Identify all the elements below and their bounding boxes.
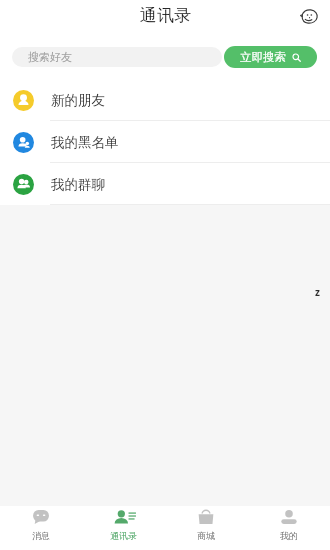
- staticText: 立即搜索: [240, 50, 286, 64]
- button[interactable]: 我的黑名单: [0, 121, 330, 163]
- staticText: 搜索好友: [28, 50, 72, 64]
- button[interactable]: 我的群聊: [0, 163, 330, 205]
- button[interactable]: 通讯录: [82, 506, 164, 550]
- button[interactable]: 搜索好友: [12, 47, 222, 67]
- button[interactable]: 立即搜索: [224, 46, 317, 68]
- staticText: 通讯录: [140, 5, 191, 26]
- staticText: 我的: [280, 530, 298, 541]
- staticText: 通讯录: [110, 530, 137, 541]
- button[interactable]: 商城: [164, 506, 247, 550]
- staticText: 商城: [197, 530, 215, 541]
- staticText: 消息: [32, 530, 50, 541]
- button[interactable]: 我的: [247, 506, 330, 550]
- button[interactable]: 新的朋友: [0, 79, 330, 121]
- staticText: 新的朋友: [51, 92, 105, 109]
- button[interactable]: 消息: [0, 506, 82, 550]
- staticText: 我的群聊: [51, 176, 105, 193]
- staticText: z: [315, 285, 320, 299]
- button[interactable]: Emoji: [297, 4, 321, 28]
- staticText: 我的黑名单: [51, 134, 119, 151]
